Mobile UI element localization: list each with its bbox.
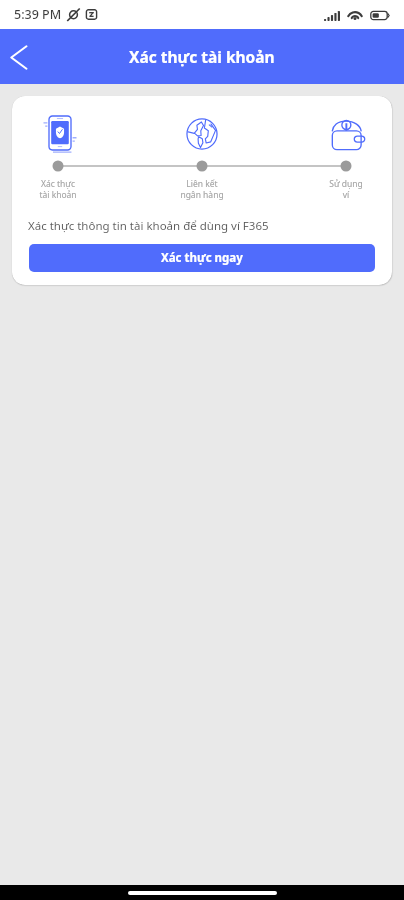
button[interactable]: Back (0, 39, 36, 75)
staticText: Xác thực tài khoản (39, 178, 77, 200)
button[interactable]: Xác thực ngay (29, 244, 375, 272)
staticText: Sử dụng ví (329, 178, 363, 200)
staticText: Xác thực tài khoản (129, 46, 275, 67)
staticText: Xác thực thông tin tài khoản để dùng ví … (28, 218, 269, 234)
staticText: 5:39 PM (14, 6, 62, 23)
staticText: Liên kết ngân hàng (180, 178, 224, 200)
staticText: Xác thực ngay (161, 250, 243, 266)
